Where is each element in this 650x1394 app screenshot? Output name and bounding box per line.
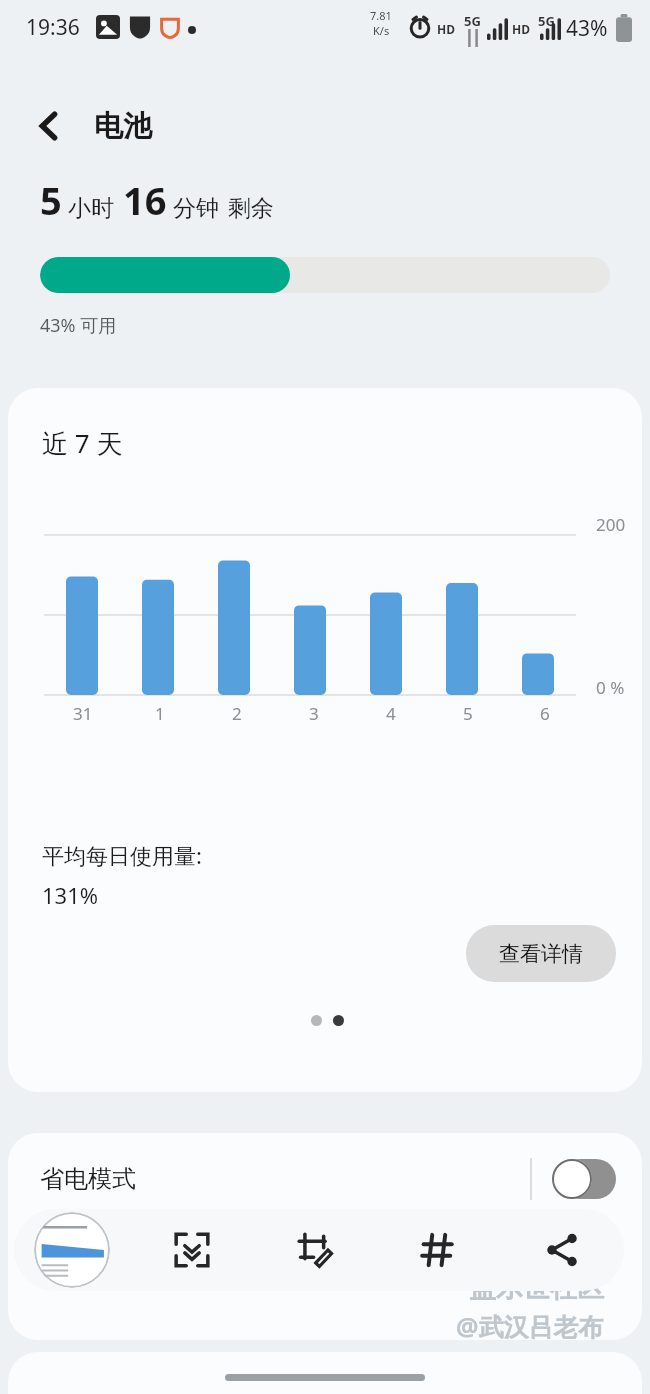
staticText: 小时 [68, 194, 114, 223]
staticText: K/s [373, 23, 390, 38]
staticText: 4 [386, 702, 396, 725]
staticText: 省电模式 [40, 1164, 136, 1194]
staticText: 5 [463, 702, 473, 725]
staticText: 6 [540, 702, 550, 725]
staticText: HD [512, 21, 530, 37]
button[interactable]: 近 7 天 [8, 388, 642, 1092]
staticText: 1 [155, 702, 165, 725]
staticText: 2 [232, 702, 242, 725]
staticText: 近 7 天 [42, 425, 123, 461]
button[interactable]: Capture [130, 1209, 253, 1291]
staticText: 分钟 [173, 194, 219, 223]
staticText: 0 % [596, 676, 625, 699]
button[interactable]: Tag [376, 1209, 500, 1291]
staticText: @武汉吕老布 [456, 1309, 604, 1340]
button[interactable]: Share [500, 1209, 624, 1291]
staticText: 131% [42, 880, 99, 910]
staticText: 5G [464, 12, 481, 30]
staticText: 16 [123, 174, 167, 226]
staticText: 19:36 [26, 13, 80, 42]
staticText: HD [437, 21, 455, 37]
button[interactable]: 查看详情 [466, 925, 616, 982]
button[interactable]: Edit [253, 1209, 376, 1291]
staticText: 5 [40, 174, 62, 226]
staticText: 31 [73, 702, 93, 725]
staticText: 43% 可用 [40, 313, 117, 338]
staticText: 7.81 [370, 8, 392, 23]
button[interactable]: Back [20, 97, 78, 155]
staticText: 平均每日使用量: [42, 840, 202, 870]
staticText: 查看详情 [499, 941, 583, 967]
button[interactable]: 省电模式 [8, 1133, 642, 1225]
staticText: 3 [309, 702, 319, 725]
staticText: 剩余 [228, 194, 274, 223]
button[interactable]: Power saving mode toggle [552, 1159, 616, 1199]
staticText: 5G [538, 12, 555, 30]
staticText: 盖乐世社区 [469, 1271, 604, 1305]
button[interactable]: Screenshot preview [34, 1212, 110, 1288]
staticText: 电池 [94, 108, 152, 145]
staticText: 43% [566, 14, 608, 43]
staticText: 200 [596, 513, 626, 536]
